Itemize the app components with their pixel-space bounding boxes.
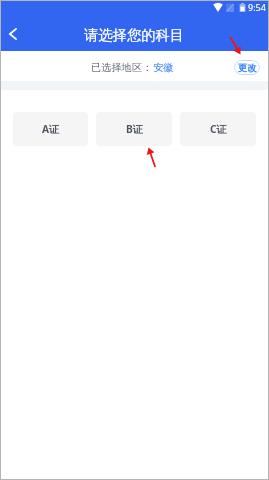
staticText: C证 [210, 122, 227, 136]
staticText: B证 [126, 122, 143, 136]
staticText: 更改 [238, 62, 257, 74]
staticText: 已选择地区： [91, 61, 153, 74]
staticText: 安徽 [153, 61, 174, 74]
button[interactable]: 更改 [234, 60, 260, 75]
staticText: 请选择您的科目 [84, 26, 185, 44]
button[interactable]: Back [0, 17, 25, 51]
staticText: 9:54 [248, 1, 266, 13]
button[interactable]: C证 [180, 112, 256, 146]
button[interactable]: A证 [13, 112, 88, 146]
staticText: A证 [42, 122, 60, 136]
button[interactable]: B证 [96, 112, 172, 146]
